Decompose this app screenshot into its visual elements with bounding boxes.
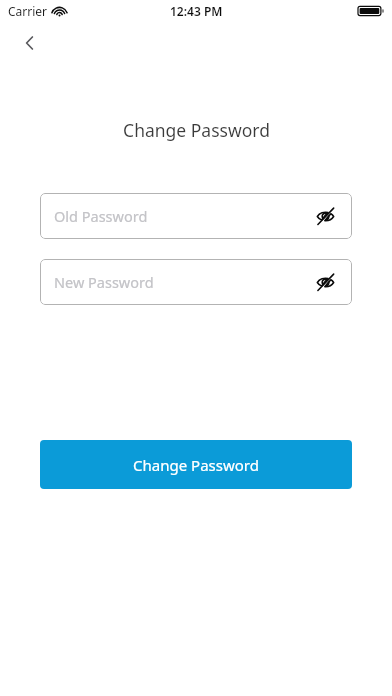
- staticText: Change Password: [133, 455, 259, 475]
- button[interactable]: Change Password: [40, 440, 352, 489]
- button[interactable]: Back: [10, 23, 50, 63]
- button[interactable]: Show password: [310, 267, 340, 297]
- staticText: Carrier: [8, 3, 48, 19]
- staticText: Change Password: [123, 118, 270, 142]
- staticText: 12:43 PM: [170, 3, 223, 19]
- staticText: New Password: [54, 272, 154, 292]
- button[interactable]: New Password: [40, 259, 352, 305]
- button[interactable]: Show password: [310, 201, 340, 231]
- staticText: Old Password: [54, 206, 148, 226]
- button[interactable]: Old Password: [40, 193, 352, 239]
